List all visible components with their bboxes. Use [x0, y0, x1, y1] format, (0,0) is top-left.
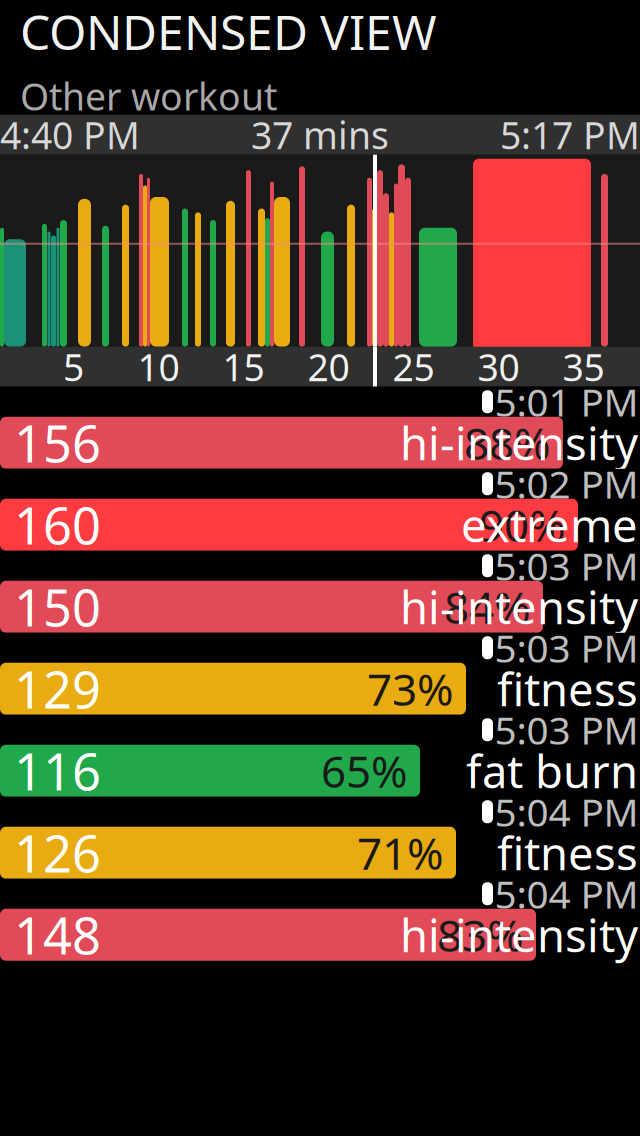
staticText: 148 — [14, 901, 101, 968]
staticText: 5:04 PM — [494, 868, 638, 919]
staticText: fat burn — [466, 741, 638, 801]
staticText: 5:17 PM — [500, 110, 640, 160]
staticText: hi-intensity — [400, 905, 638, 965]
staticText: 150 — [14, 573, 101, 640]
staticText: hi-intensity — [400, 413, 638, 473]
staticText: 15 — [222, 342, 264, 392]
staticText: 156 — [14, 409, 101, 476]
staticText: 5:04 PM — [494, 786, 638, 837]
staticText: hi-intensity — [400, 577, 638, 637]
staticText: 35 — [562, 342, 604, 392]
staticText: 90% — [479, 495, 566, 554]
staticText: 30 — [477, 342, 519, 392]
staticText: 84% — [444, 577, 531, 636]
staticText: 4:40 PM — [0, 110, 140, 160]
button[interactable]: 5:04 PM — [0, 879, 640, 961]
staticText: 10 — [137, 342, 179, 392]
staticText: 116 — [14, 737, 101, 804]
staticText: 5:03 PM — [494, 704, 638, 755]
staticText: 5:03 PM — [494, 540, 638, 591]
staticText: fitness — [497, 823, 638, 883]
staticText: 5:02 PM — [494, 458, 638, 509]
button[interactable]: 5:02 PM — [0, 469, 640, 551]
staticText: 160 — [14, 491, 101, 558]
staticText: 5:01 PM — [494, 376, 638, 427]
staticText: 37 mins — [251, 110, 389, 160]
staticText: 5 — [63, 342, 84, 392]
button[interactable]: 5:03 PM — [0, 551, 640, 633]
staticText: 5:03 PM — [494, 622, 638, 673]
button[interactable]: 5:01 PM — [0, 387, 640, 469]
staticText: 126 — [14, 819, 101, 886]
staticText: CONDENSED VIEW — [20, 0, 437, 63]
staticText: 129 — [14, 655, 101, 722]
button[interactable]: 5:04 PM — [0, 797, 640, 879]
staticText: 65% — [321, 741, 408, 800]
staticText: fitness — [497, 659, 638, 719]
staticText: 73% — [367, 659, 454, 718]
staticText: 83% — [437, 905, 524, 964]
button[interactable]: 5:03 PM — [0, 715, 640, 797]
staticText: Other workout — [20, 71, 277, 121]
staticText: 88% — [464, 413, 551, 472]
staticText: 71% — [357, 823, 444, 882]
button[interactable]: 5:03 PM — [0, 633, 640, 715]
staticText: 25 — [392, 342, 434, 392]
staticText: 20 — [307, 342, 349, 392]
staticText: extreme — [461, 495, 638, 555]
